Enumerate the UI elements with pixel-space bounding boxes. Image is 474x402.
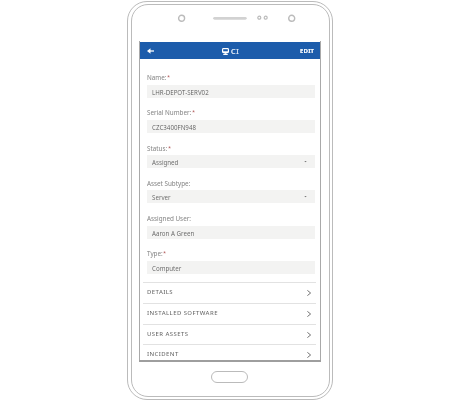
- staticText: LHR-DEPOT-SERV02: [152, 88, 209, 96]
- staticText: Assigned: [152, 158, 179, 166]
- staticText: Computer: [152, 264, 182, 272]
- staticText: INSTALLED SOFTWARE: [147, 309, 218, 317]
- staticText: Status:: [147, 144, 168, 153]
- button[interactable]: Server: [147, 190, 315, 203]
- button[interactable]: CZC3400FN948: [147, 120, 315, 133]
- button[interactable]: Computer: [147, 261, 315, 274]
- staticText: Aaron A Green: [152, 229, 195, 237]
- staticText: *: [167, 73, 171, 81]
- button[interactable]: Aaron A Green: [147, 226, 315, 239]
- button[interactable]: Assigned: [147, 155, 315, 168]
- staticText: *: [163, 249, 167, 257]
- staticText: CI: [231, 46, 240, 56]
- button[interactable]: INCIDENT: [139, 344, 321, 364]
- staticText: INCIDENT: [147, 350, 179, 358]
- button[interactable]: USER ASSETS: [139, 324, 321, 344]
- staticText: Name:: [147, 73, 167, 82]
- button[interactable]: Back: [139, 42, 161, 59]
- button[interactable]: LHR-DEPOT-SERV02: [147, 85, 315, 98]
- staticText: USER ASSETS: [147, 330, 189, 338]
- staticText: Asset Subtype:: [147, 179, 191, 188]
- staticText: EDIT: [300, 47, 315, 55]
- staticText: Assigned User:: [147, 214, 191, 223]
- staticText: Serial Number:: [147, 108, 192, 117]
- button[interactable]: DETAILS: [139, 282, 321, 302]
- button[interactable]: EDIT: [293, 42, 321, 59]
- staticText: DETAILS: [147, 288, 174, 296]
- staticText: *: [192, 108, 196, 116]
- staticText: Server: [152, 193, 171, 201]
- staticText: CZC3400FN948: [152, 123, 196, 131]
- staticText: Type:: [147, 249, 163, 258]
- staticText: *: [168, 144, 172, 152]
- button[interactable]: INSTALLED SOFTWARE: [139, 303, 321, 323]
